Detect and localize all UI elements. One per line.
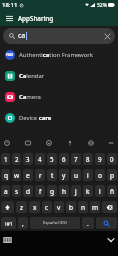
button[interactable]: a <box>1 185 10 197</box>
staticText: PASS <box>6 53 14 57</box>
staticText: e <box>26 171 30 180</box>
button[interactable]: n <box>78 201 88 213</box>
button[interactable]: 5 <box>47 153 57 165</box>
button[interactable]: 1 <box>1 153 10 165</box>
button[interactable]: , <box>18 217 28 229</box>
button[interactable]: 9 <box>95 153 105 165</box>
button[interactable]: 8 <box>83 153 93 165</box>
button[interactable]: Clear search <box>100 28 114 44</box>
staticText: n <box>81 203 86 212</box>
button[interactable]: h <box>59 185 69 197</box>
staticText: j <box>75 187 77 196</box>
button[interactable]: Stickers <box>0 136 14 150</box>
button[interactable]: Hide keyboard <box>103 234 118 245</box>
staticText: h <box>62 187 67 196</box>
button[interactable]: ñ <box>107 185 117 197</box>
button[interactable]: ca <box>3 28 115 44</box>
button[interactable]: x <box>29 201 40 213</box>
button[interactable]: 7 <box>71 153 81 165</box>
button[interactable]: . <box>82 217 94 229</box>
button[interactable]: Emoji <box>42 136 56 150</box>
button[interactable]: Search <box>96 217 117 229</box>
staticText: o <box>98 171 102 180</box>
staticText: !#1 <box>5 220 13 227</box>
staticText: v <box>57 203 61 212</box>
button[interactable]: b <box>66 201 76 213</box>
button[interactable]: Device care <box>0 107 118 128</box>
button[interactable]: Español (ES) <box>30 217 80 229</box>
button[interactable]: More options <box>105 136 117 150</box>
button[interactable]: c <box>42 201 52 213</box>
staticText: a <box>4 187 8 196</box>
button[interactable]: d <box>23 185 33 197</box>
button[interactable]: 3 <box>23 153 33 165</box>
button[interactable]: e <box>23 169 33 181</box>
button[interactable]: f <box>35 185 45 197</box>
staticText: d <box>26 187 30 196</box>
staticText: w <box>14 171 20 180</box>
button[interactable]: j <box>71 185 81 197</box>
button[interactable]: g <box>47 185 57 197</box>
button[interactable]: k <box>83 185 93 197</box>
staticText: s <box>15 187 19 196</box>
button[interactable]: 4 <box>35 153 45 165</box>
button[interactable]: Change keyboard <box>0 234 15 245</box>
staticText: ñ <box>110 187 115 196</box>
staticText: ca <box>18 31 26 41</box>
button[interactable]: Backspace <box>102 201 117 213</box>
button[interactable]: Translate <box>84 136 98 150</box>
staticText: AppSharing <box>18 14 54 23</box>
button[interactable]: Shift <box>1 201 14 213</box>
button[interactable]: o <box>95 169 105 181</box>
staticText: f <box>39 187 42 196</box>
staticText: Camera <box>19 93 41 101</box>
button[interactable]: m <box>90 201 100 213</box>
button[interactable]: u <box>71 169 81 181</box>
button[interactable]: Voice input <box>63 136 77 150</box>
staticText: r <box>39 171 42 180</box>
staticText: t <box>51 171 54 180</box>
button[interactable]: 6 <box>59 153 69 165</box>
staticText: Device care <box>19 114 52 122</box>
button[interactable]: y <box>59 169 69 181</box>
staticText: y <box>62 171 66 180</box>
staticText: i <box>87 171 89 180</box>
button[interactable]: p <box>107 169 117 181</box>
staticText: u <box>74 171 79 180</box>
staticText: k <box>86 187 90 196</box>
staticText: 0 <box>110 155 114 163</box>
button[interactable]: PASS <box>0 44 118 65</box>
button[interactable]: w <box>12 169 21 181</box>
staticText: . <box>87 219 89 228</box>
staticText: z <box>20 203 24 212</box>
button[interactable]: r <box>35 169 45 181</box>
button[interactable]: q <box>1 169 10 181</box>
staticText: 52% <box>97 2 107 9</box>
staticText: q <box>4 171 8 180</box>
staticText: 7 <box>74 155 78 163</box>
button[interactable]: i <box>83 169 93 181</box>
button[interactable]: 0 <box>107 153 117 165</box>
button[interactable]: Camera <box>0 86 118 107</box>
button[interactable]: GIF <box>21 136 35 150</box>
staticText: 6 <box>62 155 66 163</box>
staticText: 18:11 <box>2 1 18 9</box>
button[interactable]: 2 <box>12 153 21 165</box>
button[interactable]: s <box>12 185 21 197</box>
staticText: 8 <box>86 155 90 163</box>
staticText: x <box>33 203 37 212</box>
button[interactable]: l <box>95 185 105 197</box>
button[interactable]: Open navigation drawer <box>0 10 18 26</box>
button[interactable]: t <box>47 169 57 181</box>
button[interactable]: Calendar <box>0 65 118 86</box>
staticText: Español (ES) <box>43 220 67 226</box>
staticText: 4 <box>38 155 42 163</box>
button[interactable]: z <box>16 201 27 213</box>
staticText: g <box>50 187 54 196</box>
staticText: 9 <box>98 155 102 163</box>
staticText: Calendar <box>19 72 45 80</box>
staticText: l <box>99 187 101 196</box>
staticText: 3 <box>26 155 30 163</box>
button[interactable]: v <box>54 201 64 213</box>
button[interactable]: !#1 <box>1 217 16 229</box>
